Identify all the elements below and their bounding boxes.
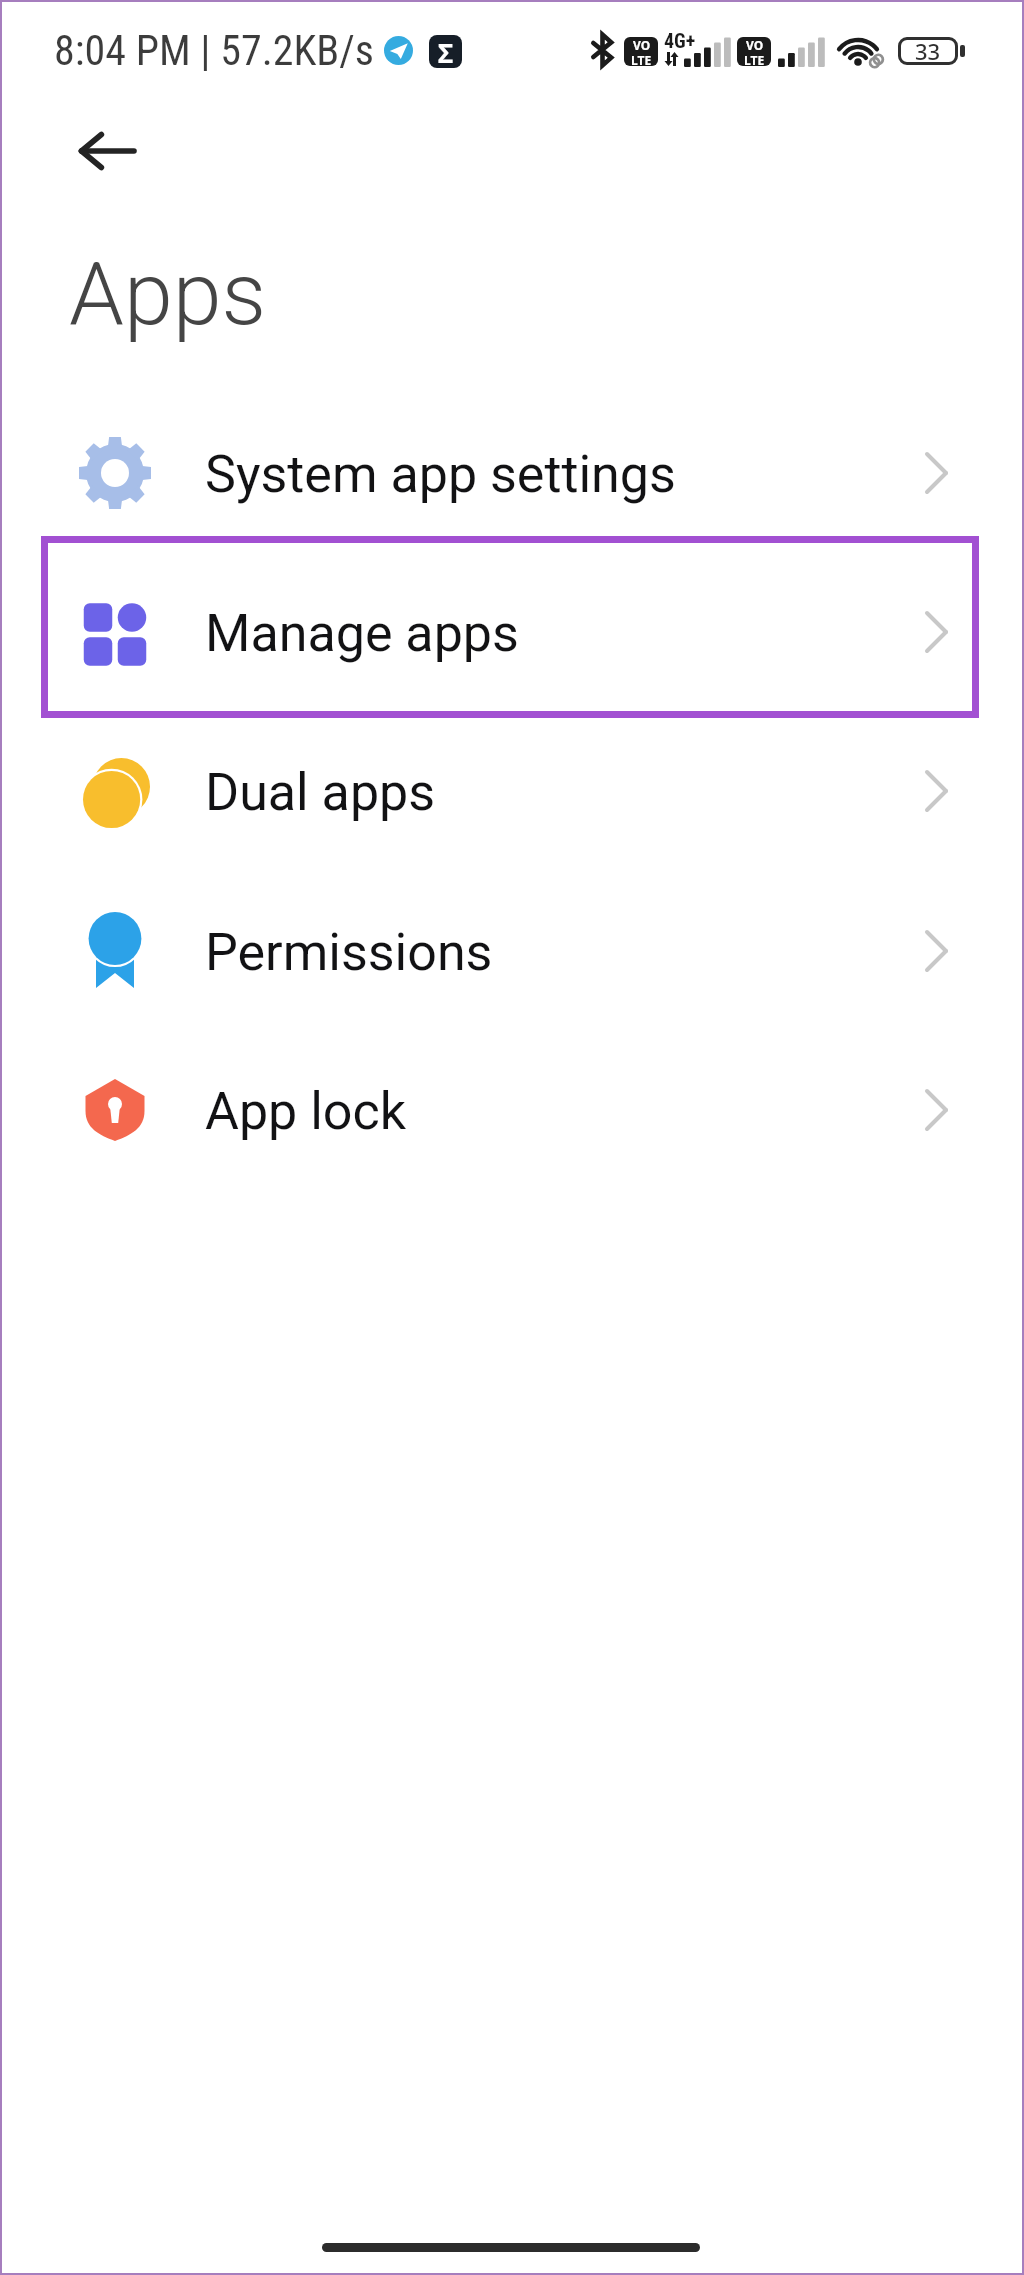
staticText: Apps — [69, 242, 267, 345]
staticText: App lock — [205, 1081, 407, 1142]
staticText: LTE — [744, 52, 765, 65]
button[interactable]: Dual apps — [0, 711, 1024, 870]
staticText: VO — [633, 37, 651, 53]
button[interactable]: App lock — [0, 1030, 1024, 1189]
staticText: 4G+ — [664, 29, 696, 52]
staticText: LTE — [631, 52, 652, 65]
staticText: System app settings — [205, 444, 676, 505]
staticText: 8:04 PM | 57.2KB/s — [54, 26, 375, 75]
staticText: Dual apps — [205, 762, 436, 823]
staticText: 33 — [915, 36, 941, 64]
staticText: Manage apps — [205, 603, 519, 664]
button[interactable]: Permissions — [0, 871, 1024, 1030]
staticText: Σ — [438, 35, 454, 68]
staticText: Permissions — [205, 922, 493, 983]
button[interactable]: Manage apps — [0, 552, 1024, 711]
button[interactable]: System app settings — [0, 393, 1024, 552]
staticText: VO — [746, 37, 764, 53]
button[interactable]: Back — [58, 102, 156, 200]
